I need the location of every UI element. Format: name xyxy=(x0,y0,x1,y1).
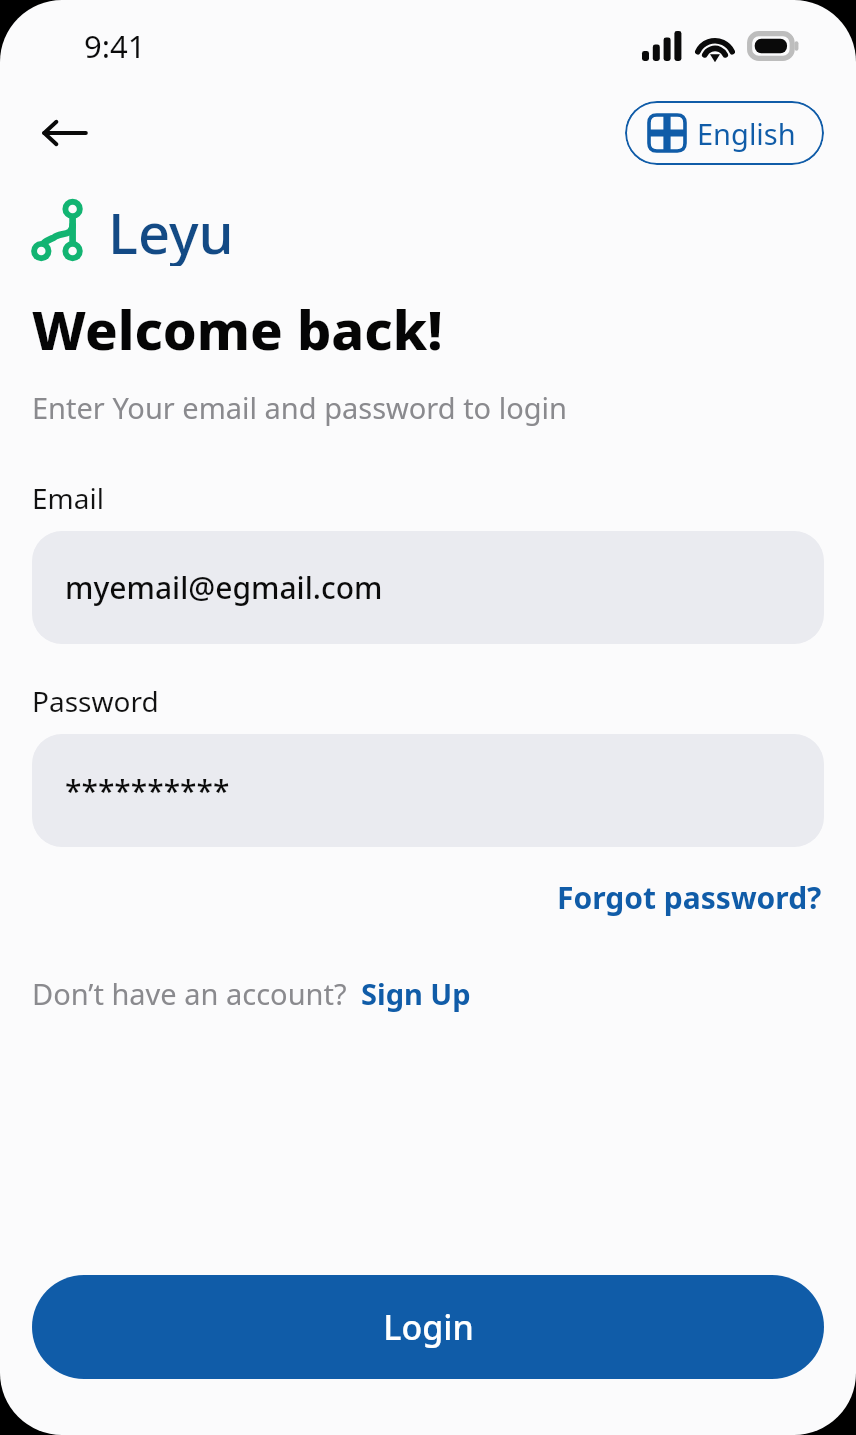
staticText: ********** xyxy=(65,770,230,811)
staticText: Email xyxy=(32,479,104,517)
button[interactable]: ********** xyxy=(32,734,824,847)
button[interactable]: myemail@egmail.com xyxy=(32,531,824,644)
staticText: myemail@egmail.com xyxy=(65,567,383,608)
button[interactable]: Forgot password? xyxy=(555,871,824,924)
staticText: Forgot password? xyxy=(557,877,822,918)
staticText: Login xyxy=(383,1304,474,1350)
staticText: English xyxy=(697,114,796,153)
staticText: Leyu xyxy=(108,194,234,266)
staticText: Don’t have an account? xyxy=(32,974,347,1013)
staticText: Welcome back! xyxy=(32,292,443,366)
button[interactable]: English xyxy=(625,101,824,165)
button[interactable]: Sign Up xyxy=(359,968,473,1019)
button[interactable]: Back xyxy=(32,101,96,165)
staticText: Password xyxy=(32,682,159,720)
staticText: 9:41 xyxy=(84,25,146,67)
staticText: Enter Your email and password to login xyxy=(32,388,567,427)
staticText: Sign Up xyxy=(361,974,471,1013)
button[interactable]: Login xyxy=(32,1275,824,1379)
